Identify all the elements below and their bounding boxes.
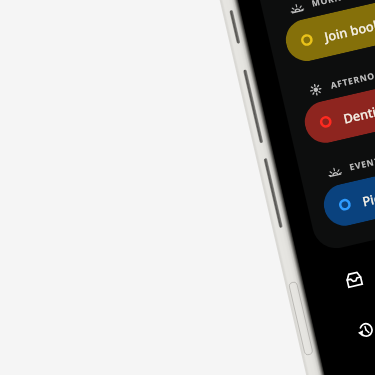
button[interactable]: Pick up groceries: [320, 121, 375, 230]
staticText: EVENING: [348, 152, 375, 173]
button[interactable]: Inbox: [328, 253, 375, 306]
staticText: MORNING: [310, 0, 362, 10]
staticText: Join book club: [323, 9, 375, 45]
button[interactable]: Join book club: [282, 0, 375, 65]
button[interactable]: Dentist appointment: [301, 39, 375, 147]
button[interactable]: History: [339, 304, 375, 357]
staticText: AFTERNOON: [329, 66, 375, 92]
staticText: Dentist appointment: [341, 81, 375, 127]
staticText: Pick up groceries: [361, 169, 375, 209]
